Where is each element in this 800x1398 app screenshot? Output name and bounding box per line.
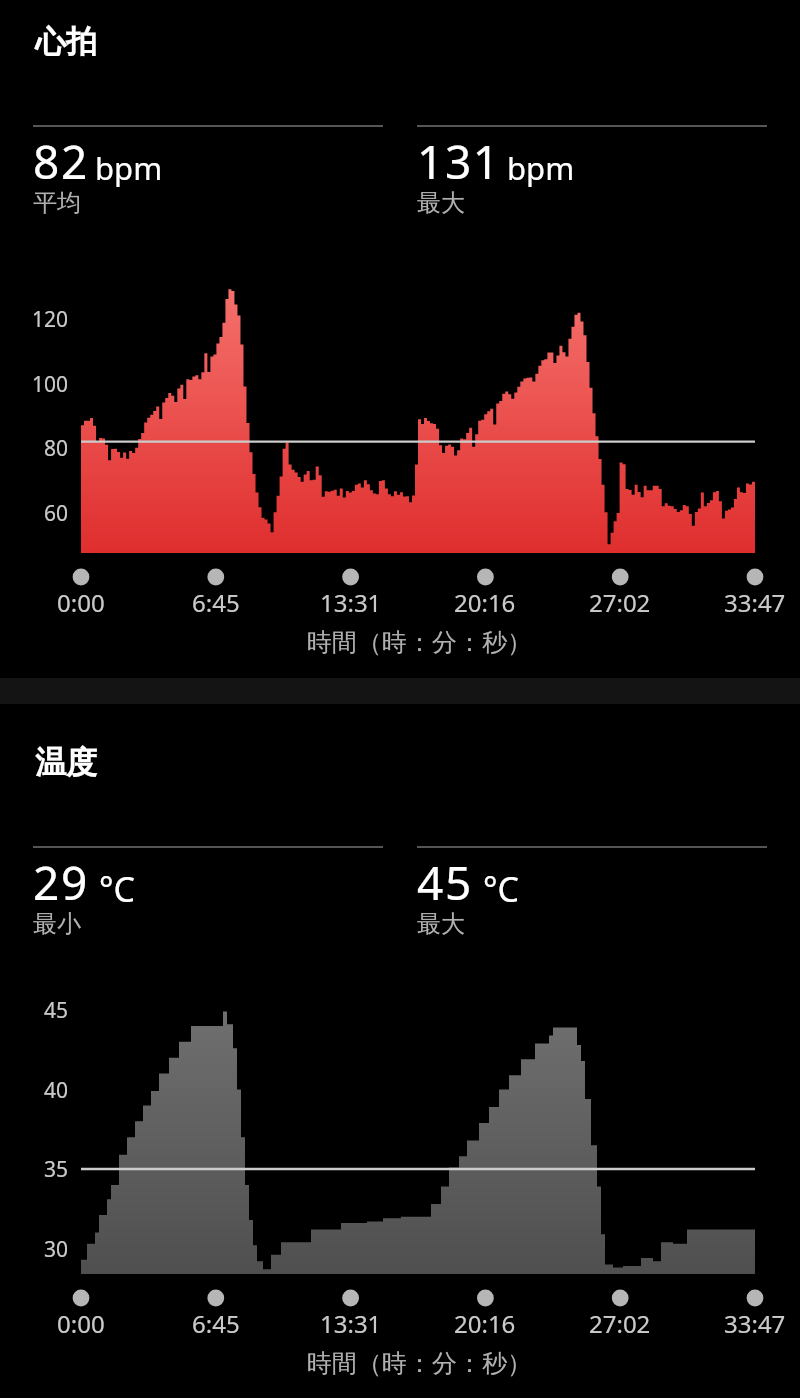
staticText: 0:00 <box>57 586 105 619</box>
staticText: 80 <box>44 434 69 463</box>
staticText: 6:45 <box>192 586 240 619</box>
staticText: 6:45 <box>192 1307 240 1340</box>
staticText: 最大 <box>417 909 465 939</box>
staticText: 33:47 <box>724 586 786 619</box>
staticText: 33:47 <box>724 1307 786 1340</box>
staticText: 20:16 <box>454 1307 516 1340</box>
staticText: 35 <box>44 1155 69 1184</box>
staticText: 27:02 <box>589 586 651 619</box>
staticText: 平均 <box>33 188 81 218</box>
staticText: 60 <box>44 499 69 528</box>
staticText: 27:02 <box>589 1307 651 1340</box>
staticText: 45 <box>417 851 473 914</box>
staticText: 29 <box>33 851 89 914</box>
staticText: bpm <box>507 147 575 189</box>
staticText: 82 <box>33 130 89 193</box>
staticText: 100 <box>32 370 69 399</box>
staticText: 心拍 <box>35 22 97 61</box>
staticText: 温度 <box>35 743 97 782</box>
staticText: °C <box>483 866 520 912</box>
button[interactable]: 温度 <box>0 704 800 1398</box>
staticText: 120 <box>32 305 69 334</box>
staticText: 45 <box>44 996 69 1025</box>
staticText: 40 <box>44 1076 69 1105</box>
staticText: 20:16 <box>454 586 516 619</box>
staticText: 13:31 <box>320 586 382 619</box>
staticText: 0:00 <box>57 1307 105 1340</box>
staticText: 30 <box>44 1235 69 1264</box>
staticText: 最大 <box>417 188 465 218</box>
staticText: 131 <box>417 130 501 193</box>
staticText: 最小 <box>33 909 81 939</box>
staticText: bpm <box>95 147 163 189</box>
staticText: 時間（時：分：秒） <box>307 627 532 658</box>
staticText: °C <box>99 866 136 912</box>
staticText: 時間（時：分：秒） <box>307 1348 532 1379</box>
staticText: 13:31 <box>320 1307 382 1340</box>
button[interactable]: 心拍 <box>0 0 800 678</box>
